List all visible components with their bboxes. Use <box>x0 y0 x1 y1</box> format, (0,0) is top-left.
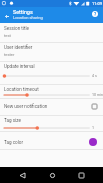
button[interactable]: Back <box>15 168 29 182</box>
button[interactable]: Session title <box>0 23 103 42</box>
staticText: New user notification <box>4 104 48 109</box>
button[interactable]: Tag size <box>0 115 103 130</box>
button[interactable]: Home <box>45 168 59 182</box>
button[interactable]: Help <box>89 8 101 20</box>
button[interactable]: User identifier <box>0 42 103 61</box>
button[interactable]: Update interval <box>0 61 103 76</box>
staticText: Settings <box>13 9 33 15</box>
staticText: Location sharing <box>13 15 43 20</box>
staticText: Tag size <box>4 118 21 123</box>
staticText: User identifier <box>4 45 33 50</box>
staticText: Tag color <box>4 140 24 145</box>
staticText: test <box>4 33 11 38</box>
staticText: 4 s <box>92 74 103 78</box>
staticText: Session title <box>4 26 29 31</box>
button[interactable]: Back <box>0 7 13 23</box>
button[interactable]: Location timeout <box>0 84 103 99</box>
staticText: 1 <box>92 126 103 130</box>
staticText: 10 min <box>92 93 103 97</box>
staticText: Location timeout <box>4 87 39 92</box>
staticText: ? <box>94 12 97 17</box>
staticText: tester <box>4 52 15 57</box>
staticText: 11:09 <box>92 1 102 6</box>
button[interactable]: New user notification <box>0 98 103 115</box>
staticText: Update interval <box>4 64 35 69</box>
button[interactable]: Tag color <box>0 131 103 147</box>
button[interactable]: Recents <box>74 168 88 182</box>
